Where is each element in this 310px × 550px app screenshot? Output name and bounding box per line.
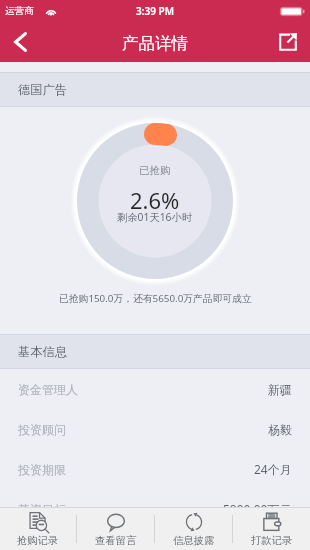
button[interactable]: 资金管理人 bbox=[0, 369, 310, 409]
staticText: 已抢购150.0万，还有5650.0万产品即可成立 bbox=[59, 292, 252, 305]
staticText: 新疆 bbox=[268, 382, 292, 397]
button[interactable]: 查看留言 bbox=[77, 508, 154, 550]
staticText: 资金管理人 bbox=[18, 382, 78, 397]
staticText: 已抢购 bbox=[139, 164, 171, 177]
staticText: 杨毅 bbox=[268, 422, 292, 437]
button[interactable]: 募资目标 bbox=[0, 489, 310, 529]
staticText: 剩余01天16小时 bbox=[117, 210, 193, 224]
staticText: 2.6% bbox=[130, 185, 180, 215]
staticText: 投资顾问 bbox=[18, 422, 66, 437]
button[interactable]: 信息披露 bbox=[155, 508, 232, 550]
staticText: 信息披露 bbox=[173, 534, 215, 547]
staticText: 3:39 PM bbox=[136, 4, 174, 18]
button[interactable]: 打款记录 bbox=[233, 508, 310, 550]
staticText: 运营商 bbox=[5, 5, 34, 17]
button[interactable]: 投资期限 bbox=[0, 449, 310, 489]
staticText: 募资目标 bbox=[18, 502, 66, 517]
staticText: 24个月 bbox=[254, 461, 292, 477]
staticText: 产品详情 bbox=[122, 33, 188, 54]
staticText: 打款记录 bbox=[251, 534, 293, 547]
staticText: 5800.00万元 bbox=[223, 501, 292, 517]
staticText: 德国广告 bbox=[18, 82, 68, 97]
staticText: 查看留言 bbox=[95, 534, 137, 547]
button[interactable]: Share bbox=[268, 22, 310, 62]
button[interactable]: 投资顾问 bbox=[0, 409, 310, 449]
staticText: 抢购记录 bbox=[17, 534, 59, 547]
staticText: 基本信息 bbox=[18, 344, 68, 359]
button[interactable]: 抢购记录 bbox=[0, 508, 76, 550]
staticText: 投资期限 bbox=[18, 462, 66, 477]
button[interactable]: Back bbox=[0, 22, 42, 62]
